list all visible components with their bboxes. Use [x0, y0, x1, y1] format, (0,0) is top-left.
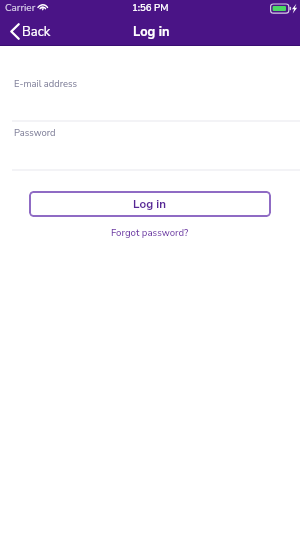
- staticText: Forgot password?: [111, 226, 189, 239]
- button[interactable]: Log in: [29, 191, 271, 217]
- staticText: Password: [14, 126, 56, 139]
- staticText: Log in: [133, 196, 167, 212]
- button[interactable]: Back: [4, 19, 58, 45]
- staticText: Log in: [133, 23, 170, 40]
- staticText: Back: [22, 23, 51, 41]
- staticText: E-mail address: [14, 77, 78, 90]
- other: Wi-Fi: [37, 1, 49, 11]
- staticText: Carrier: [5, 1, 36, 15]
- button[interactable]: Forgot password?: [103, 224, 197, 241]
- button[interactable]: E-mail address: [0, 80, 300, 122]
- button[interactable]: Password: [0, 129, 300, 171]
- staticText: 1:56 PM: [132, 1, 169, 14]
- other: Battery charging: [270, 4, 297, 14]
